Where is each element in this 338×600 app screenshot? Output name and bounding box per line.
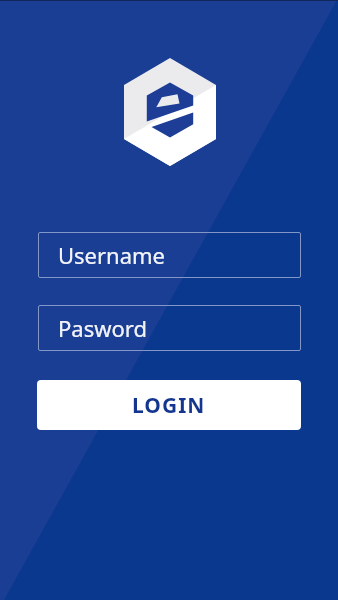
button[interactable]: Pasword [38, 305, 301, 351]
button[interactable]: Username [38, 232, 301, 278]
button[interactable]: LOGIN [37, 380, 301, 430]
staticText: Username [58, 240, 166, 270]
staticText: Pasword [58, 313, 147, 343]
staticText: LOGIN [132, 391, 206, 420]
